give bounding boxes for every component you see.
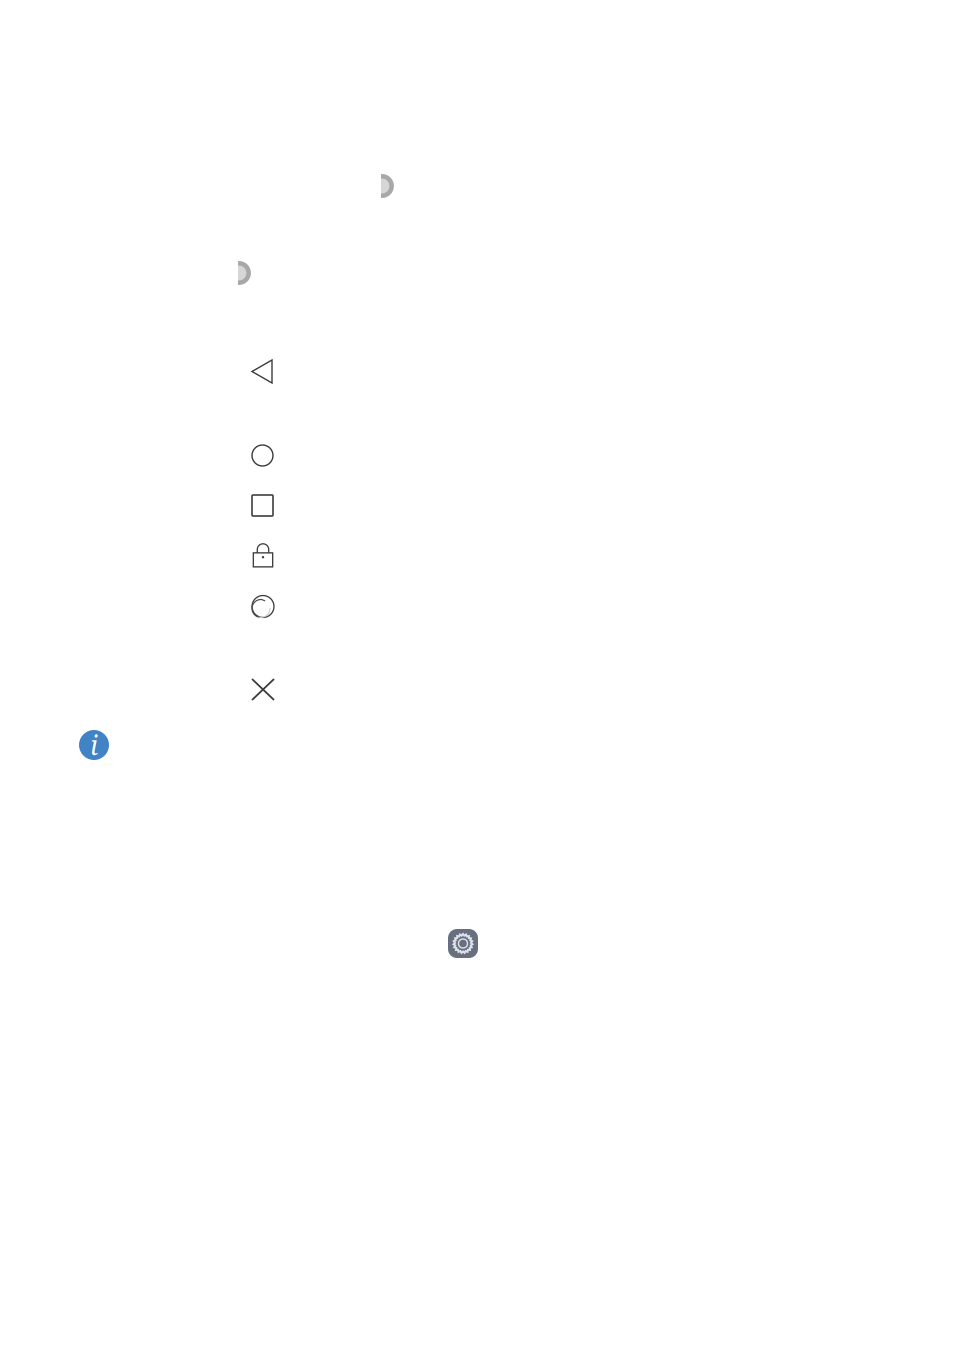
button[interactable]: More information (79, 730, 109, 760)
button[interactable]: Storage (0, 495, 954, 516)
button[interactable]: Status (0, 445, 954, 466)
button[interactable]: Refresh rate (0, 595, 954, 619)
button[interactable]: Privacy (0, 541, 954, 567)
button[interactable]: Collapse details (0, 360, 954, 383)
button[interactable]: Settings (448, 929, 478, 958)
button[interactable]: Dismiss (252, 679, 274, 700)
staticText: i (90, 727, 98, 763)
